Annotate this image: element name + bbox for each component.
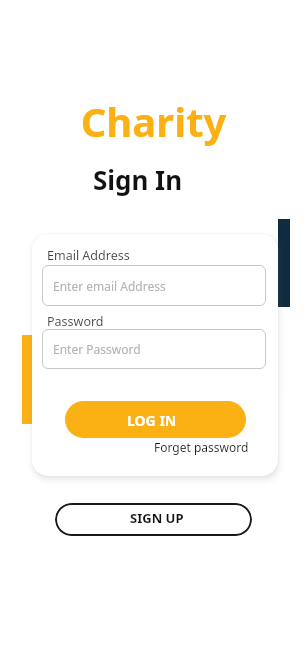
staticText: Enter email Address [53, 278, 166, 294]
staticText: Charity [0, 94, 307, 148]
staticText: Forget password [154, 439, 249, 455]
staticText: Sign In [0, 162, 291, 197]
staticText: Enter Password [53, 341, 141, 357]
staticText: SIGN UP [130, 509, 184, 527]
staticText: LOG IN [127, 411, 177, 430]
staticText: Password [47, 313, 104, 330]
staticText: Email Address [47, 247, 130, 264]
